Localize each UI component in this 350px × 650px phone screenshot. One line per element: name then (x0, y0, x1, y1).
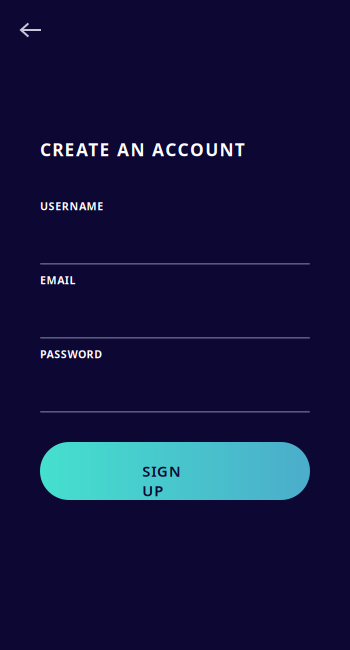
button[interactable]: EMAIL (40, 273, 310, 347)
staticText: EMAIL (40, 273, 75, 287)
button[interactable]: PASSWORD (40, 347, 310, 421)
button[interactable]: Back (0, 0, 56, 50)
button[interactable]: USERNAME (40, 199, 310, 273)
staticText: PASSWORD (40, 347, 102, 361)
button[interactable]: SIGN UP (40, 442, 310, 500)
staticText: SIGN UP (142, 461, 208, 481)
staticText: CREATE AN ACCOUNT (40, 138, 245, 161)
staticText: USERNAME (40, 199, 103, 213)
